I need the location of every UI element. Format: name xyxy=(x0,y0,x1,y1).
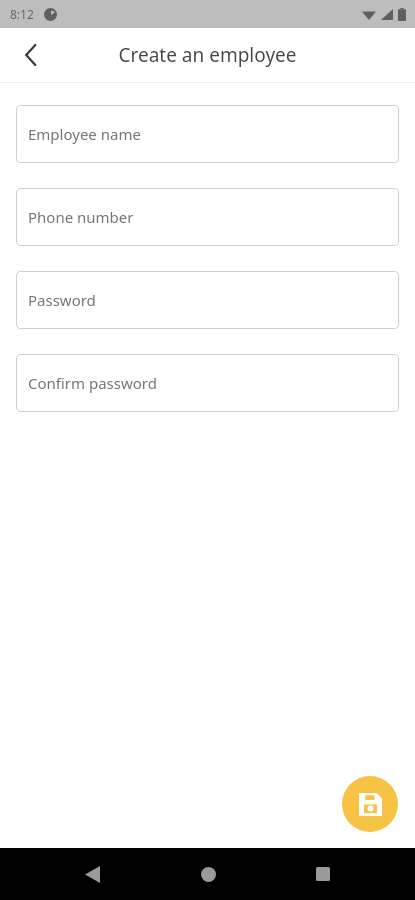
staticText: Confirm password xyxy=(28,373,157,393)
button[interactable]: Back xyxy=(9,33,53,77)
staticText: Phone number xyxy=(28,207,134,227)
button[interactable]: Employee name xyxy=(16,105,399,163)
button[interactable]: Save xyxy=(342,776,398,832)
button[interactable]: Confirm password xyxy=(16,354,399,412)
button[interactable]: Home xyxy=(184,850,232,898)
staticText: 8:12 xyxy=(10,6,34,22)
staticText: Password xyxy=(28,290,96,310)
staticText: Create an employee xyxy=(118,42,297,68)
button[interactable]: Password xyxy=(16,271,399,329)
staticText: Employee name xyxy=(28,124,141,144)
button[interactable]: Phone number xyxy=(16,188,399,246)
button[interactable]: Recent apps xyxy=(299,850,347,898)
button[interactable]: Back xyxy=(68,850,116,898)
